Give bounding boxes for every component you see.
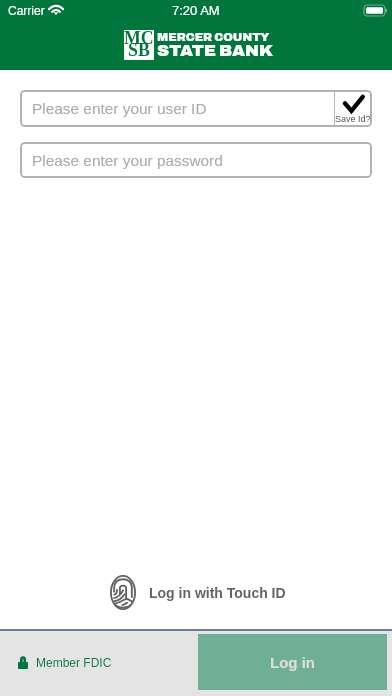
staticText: Member FDIC	[36, 656, 112, 669]
staticText: 7:20 AM	[172, 3, 220, 18]
button[interactable]: Please enter your user ID	[20, 90, 334, 127]
staticText: MC	[124, 28, 154, 48]
staticText: SB	[128, 40, 150, 60]
staticText: Please enter your user ID	[32, 100, 207, 117]
staticText: Carrier	[8, 4, 45, 17]
button[interactable]: Please enter your password	[20, 142, 372, 178]
button[interactable]: Member FDIC	[18, 656, 112, 669]
staticText: Save Id?	[335, 114, 371, 124]
staticText: MERCER COUNTY	[157, 31, 270, 44]
button[interactable]: Touch ID	[110, 575, 286, 610]
staticText: Log in	[270, 654, 315, 671]
button[interactable]: Save Id?	[334, 90, 372, 127]
staticText: Log in with Touch ID	[149, 585, 286, 601]
other: Touch ID	[110, 575, 136, 610]
staticText: STATE BANK	[157, 41, 274, 59]
staticText: Please enter your password	[32, 152, 223, 169]
button[interactable]: Log in	[198, 634, 387, 690]
